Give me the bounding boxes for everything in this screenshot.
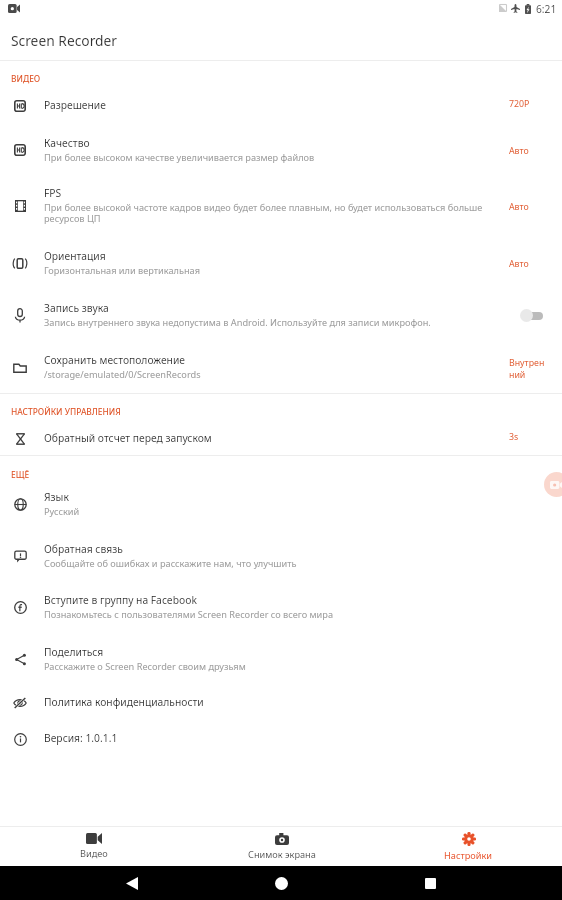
button[interactable]: FPS [0,186,562,221]
staticText: Видео [80,847,108,860]
button[interactable]: Поделиться [0,645,562,669]
button[interactable]: Ориентация [0,249,562,273]
staticText: Screen Recorder [11,31,118,50]
staticText: 720P [509,98,530,110]
button[interactable]: Снимок экрана [188,827,375,866]
staticText: Разрешение [44,98,106,112]
staticText: Поделиться [44,645,104,659]
staticText: ЕЩЁ [11,469,30,480]
button[interactable]: Видео [0,827,188,866]
staticText: Настройки [444,849,493,862]
button[interactable]: Качество [0,136,562,160]
staticText: Сообщайте об ошибках и расскажите нам, ч… [44,557,297,570]
staticText: Обратная связь [44,542,123,556]
staticText: Авто [509,258,529,270]
staticText: /storage/emulated/0/ScreenRecords [44,368,201,381]
button[interactable]: Запись звука [0,301,562,325]
button[interactable]: Home [264,866,298,900]
staticText: Версия: 1.0.1.1 [44,731,118,745]
staticText: Расскажите о Screen Recorder своим друзь… [44,660,246,673]
staticText: Снимок экрана [248,848,316,861]
staticText: При более высокой частоте кадров видео б… [44,201,499,224]
staticText: НАСТРОЙКИ УПРАВЛЕНИЯ [11,406,121,417]
staticText: Ориентация [44,249,106,263]
staticText: Запись внутреннего звука недопустима в A… [44,316,431,329]
staticText: Русский [44,505,80,518]
button[interactable]: Сохранить местоположение [0,353,562,377]
button[interactable]: Обратный отсчет перед запуском [0,431,562,443]
staticText: Обратный отсчет перед запуском [44,431,212,445]
staticText: Вступите в группу на Facebook [44,593,197,607]
button[interactable]: Язык [0,490,562,514]
button[interactable]: Recents [413,866,447,900]
staticText: ВИДЕО [11,73,41,84]
staticText: Качество [44,136,90,150]
button[interactable]: Настройки [375,827,562,866]
staticText: FPS [44,186,62,200]
staticText: Горизонтальная или вертикальная [44,264,201,277]
button[interactable]: Record [544,472,562,497]
staticText: 6:21 [536,2,557,16]
button[interactable]: Разрешение [0,98,562,110]
button[interactable]: Вступите в группу на Facebook [0,593,562,617]
button[interactable]: Политика конфиденциальности [0,695,562,707]
staticText: При более высоком качестве увеличивается… [44,151,315,164]
staticText: Политика конфиденциальности [44,695,204,709]
button[interactable]: Обратная связь [0,542,562,566]
staticText: Авто [509,145,529,157]
staticText: Познакомьтесь с пользователями Screen Re… [44,608,334,621]
staticText: 3s [509,431,519,443]
staticText: Авто [509,201,529,213]
button[interactable]: Back [115,866,149,900]
staticText: Запись звука [44,301,109,315]
staticText: Внутренний [509,357,549,380]
staticText: Язык [44,490,69,504]
staticText: Сохранить местоположение [44,353,185,367]
button[interactable]: Версия: 1.0.1.1 [0,731,562,743]
